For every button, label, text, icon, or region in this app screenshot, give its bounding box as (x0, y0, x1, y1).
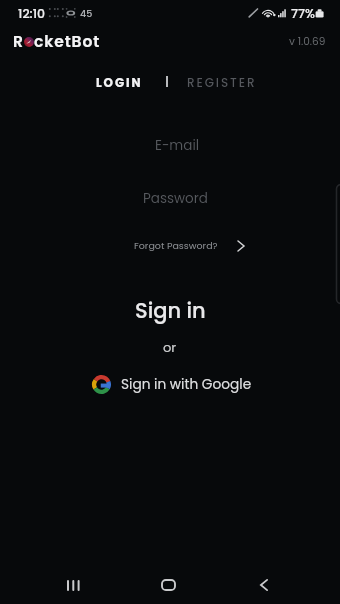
button[interactable]: Password (5, 184, 340, 212)
staticText: R (13, 31, 24, 53)
staticText: v 1.0.69 (289, 34, 326, 49)
staticText: 77% (291, 5, 315, 22)
button[interactable]: Forgot Password? (126, 236, 253, 255)
button[interactable]: REGISTER (181, 70, 263, 95)
button[interactable]: Recents (26, 566, 121, 604)
staticText: Sign in (135, 296, 206, 324)
staticText: Sign in with Google (121, 375, 252, 394)
staticText: REGISTER (187, 74, 257, 91)
button[interactable]: Sign in (0, 296, 340, 324)
staticText: 45 (80, 7, 93, 20)
button[interactable]: Home (121, 566, 216, 604)
button[interactable]: Sign in with Google (92, 375, 252, 394)
button[interactable]: Back (216, 566, 311, 604)
staticText: cketBot (34, 31, 101, 53)
staticText: Password (143, 189, 208, 208)
button[interactable]: LOGIN (90, 70, 149, 95)
staticText: Forgot Password? (134, 239, 218, 252)
staticText: or (163, 338, 177, 356)
staticText: E-mail (155, 136, 200, 155)
staticText: LOGIN (96, 74, 143, 91)
button[interactable]: E-mail (7, 131, 340, 159)
staticText: 12:10 (18, 5, 46, 22)
